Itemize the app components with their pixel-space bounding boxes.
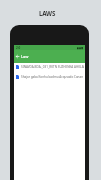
button[interactable]: SINAVDA-BDA-_031_RKTN SUZHENKA AHKLAHA K…	[14, 62, 85, 72]
staticText: SINAVDA-BDA-_031_RKTN SUZHENKA AHKLAHA K…	[21, 65, 84, 69]
staticText: LAWS	[39, 9, 56, 17]
staticText: Law	[21, 54, 29, 59]
button[interactable]: Law	[14, 50, 85, 63]
button[interactable]: Shajar gaba Konhu badmu Acquvado Canan m…	[14, 72, 85, 82]
staticText: Shajar gaba Konhu badmu Acquvado Canan m…	[21, 75, 84, 79]
staticText: 2:0	[16, 46, 21, 50]
